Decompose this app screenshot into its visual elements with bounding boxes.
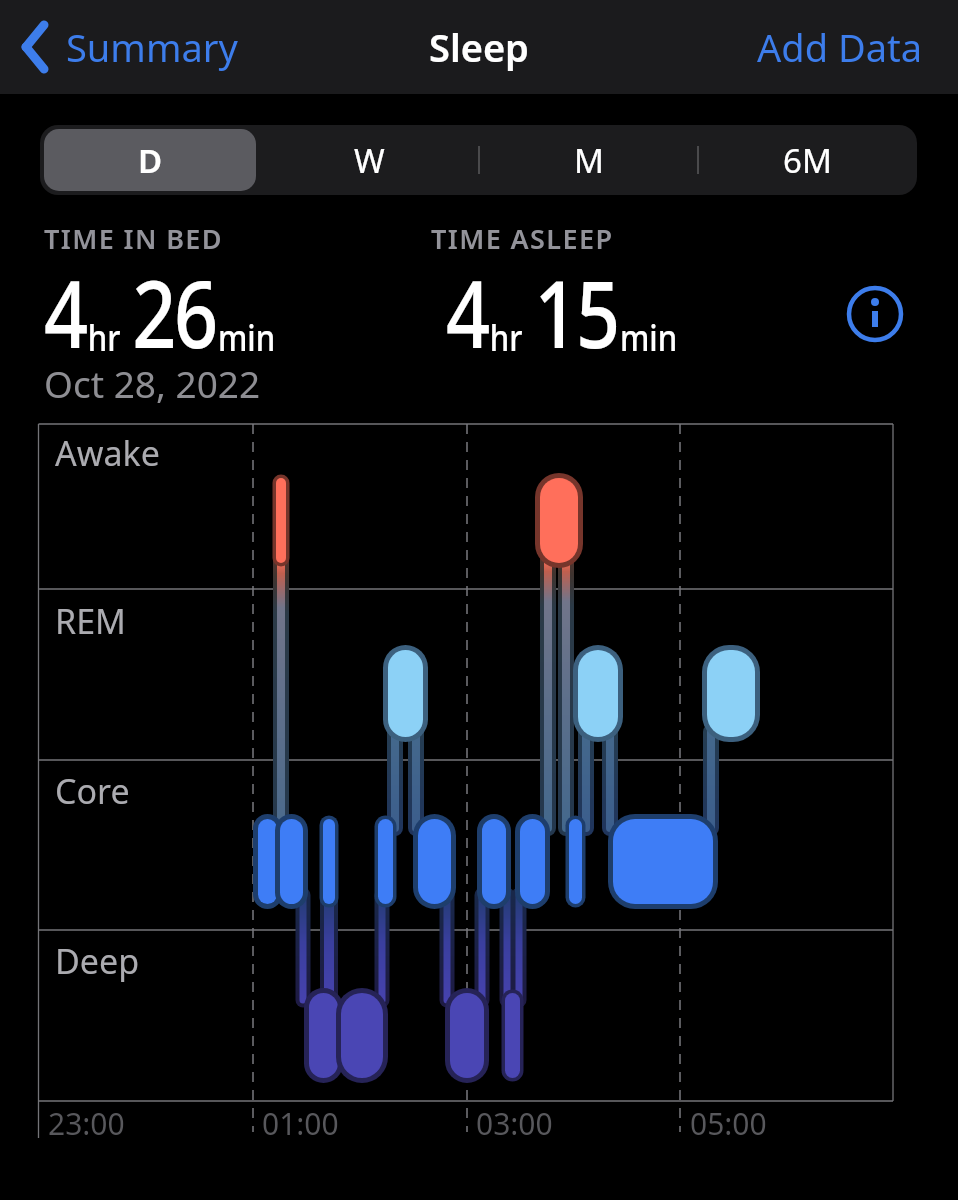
- staticText: W: [354, 138, 385, 183]
- staticText: hr: [490, 311, 522, 361]
- staticText: Awake: [55, 430, 160, 476]
- staticText: 4: [446, 250, 488, 375]
- staticText: 01:00: [262, 1103, 339, 1144]
- button[interactable]: D: [40, 125, 260, 195]
- staticText: 03:00: [476, 1103, 553, 1144]
- button[interactable]: 6M: [698, 125, 917, 195]
- staticText: TIME ASLEEP: [431, 220, 614, 257]
- staticText: D: [138, 138, 163, 183]
- staticText: REM: [55, 598, 126, 644]
- button[interactable]: [845, 284, 905, 344]
- staticText: TIME IN BED: [44, 220, 223, 257]
- staticText: 05:00: [690, 1103, 767, 1144]
- staticText: M: [574, 138, 604, 183]
- staticText: Core: [55, 768, 130, 814]
- staticText: 4: [44, 250, 86, 375]
- staticText: hr: [88, 311, 120, 361]
- staticText: min: [620, 311, 678, 361]
- button[interactable]: Summary: [0, 21, 238, 73]
- staticText: Sleep: [429, 21, 529, 73]
- staticText: Oct 28, 2022: [44, 358, 261, 408]
- staticText: 26: [132, 250, 216, 375]
- staticText: Add Data: [757, 21, 922, 73]
- button[interactable]: Add Data: [757, 21, 958, 73]
- staticText: 15: [534, 250, 618, 375]
- staticText: Summary: [66, 21, 238, 73]
- staticText: min: [218, 311, 276, 361]
- button[interactable]: W: [260, 125, 479, 195]
- staticText: 6M: [783, 138, 832, 183]
- staticText: Deep: [55, 938, 140, 984]
- staticText: 23:00: [48, 1103, 125, 1144]
- button[interactable]: M: [479, 125, 698, 195]
